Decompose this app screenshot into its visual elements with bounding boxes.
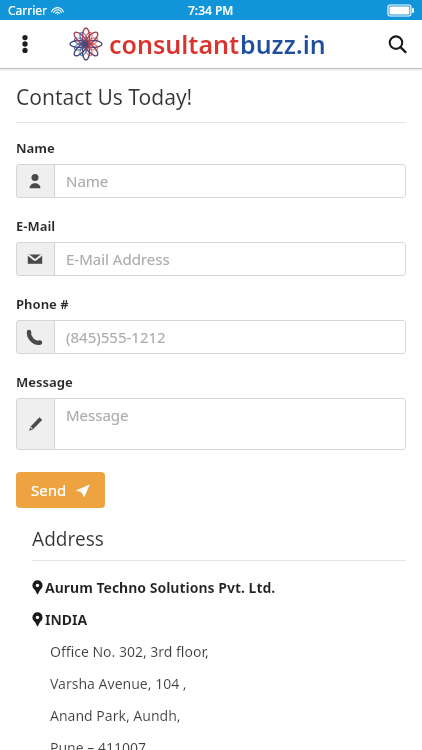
button[interactable]: E-Mail Address (16, 242, 406, 276)
staticText: Aurum Techno Solutions Pvt. Ltd. (45, 578, 276, 597)
staticText: E-Mail Address (66, 249, 170, 269)
staticText: Carrier (8, 2, 48, 18)
staticText: Message (16, 373, 73, 391)
staticText: Name (66, 171, 109, 191)
staticText: Varsha Avenue, 104 , (50, 674, 187, 693)
button[interactable]: consultant (66, 24, 326, 64)
staticText: Office No. 302, 3rd floor, (50, 642, 209, 661)
staticText: Name (16, 139, 55, 157)
staticText: 7:34 PM (188, 2, 234, 18)
button[interactable]: (845)555-1212 (16, 320, 406, 354)
button[interactable]: Name (16, 164, 406, 198)
staticText: consultant (109, 27, 240, 61)
staticText: Send (31, 480, 67, 500)
button[interactable]: Send (16, 472, 105, 508)
button[interactable]: Message (16, 398, 406, 450)
staticText: Contact Us Today! (16, 83, 193, 112)
staticText: INDIA (45, 610, 88, 629)
button[interactable]: More options (0, 20, 50, 68)
staticText: Anand Park, Aundh, (50, 706, 181, 725)
staticText: E-Mail (16, 217, 56, 235)
staticText: Phone # (16, 295, 69, 313)
button[interactable]: Search (372, 20, 422, 68)
staticText: Address (32, 526, 104, 552)
staticText: Pune – 411007 (50, 738, 146, 750)
staticText: Message (66, 405, 129, 425)
staticText: buzz.in (240, 27, 326, 61)
staticText: (845)555-1212 (66, 327, 166, 347)
